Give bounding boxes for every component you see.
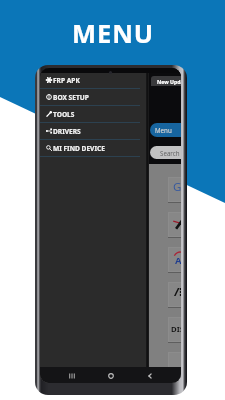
button[interactable]: DIS: [168, 317, 181, 342]
button[interactable]: Menu: [150, 123, 181, 137]
staticText: FRP APK: [53, 76, 80, 85]
button[interactable]: [168, 212, 181, 237]
staticText: MENU: [72, 16, 154, 51]
button[interactable]: Go: [168, 177, 181, 202]
staticText: MI FIND DEVICE: [53, 144, 105, 153]
button[interactable]: Recents: [64, 368, 79, 383]
staticText: Search h: [160, 149, 181, 157]
staticText: DRIVERS: [53, 127, 81, 136]
button[interactable]: BOX SETUP: [40, 89, 148, 105]
button[interactable]: Ai: [168, 247, 181, 272]
button[interactable]: [168, 282, 181, 307]
button[interactable]: New Update: [151, 76, 181, 86]
staticText: BOX SETUP: [53, 93, 89, 102]
staticText: Go: [173, 179, 181, 195]
button[interactable]: Home: [103, 368, 118, 383]
button[interactable]: [168, 352, 181, 377]
staticText: New Update: [157, 78, 181, 85]
button[interactable]: MI FIND DEVICE: [40, 140, 148, 156]
button[interactable]: Back: [142, 368, 157, 383]
button[interactable]: Search h: [150, 146, 181, 159]
button[interactable]: FRP APK: [40, 72, 148, 88]
staticText: TOOLS: [53, 110, 75, 119]
button[interactable]: DRIVERS: [40, 123, 148, 139]
button[interactable]: TOOLS: [40, 106, 148, 122]
staticText: Menu: [155, 126, 172, 134]
staticText: Ai: [175, 254, 181, 267]
staticText: DIS: [171, 324, 181, 335]
